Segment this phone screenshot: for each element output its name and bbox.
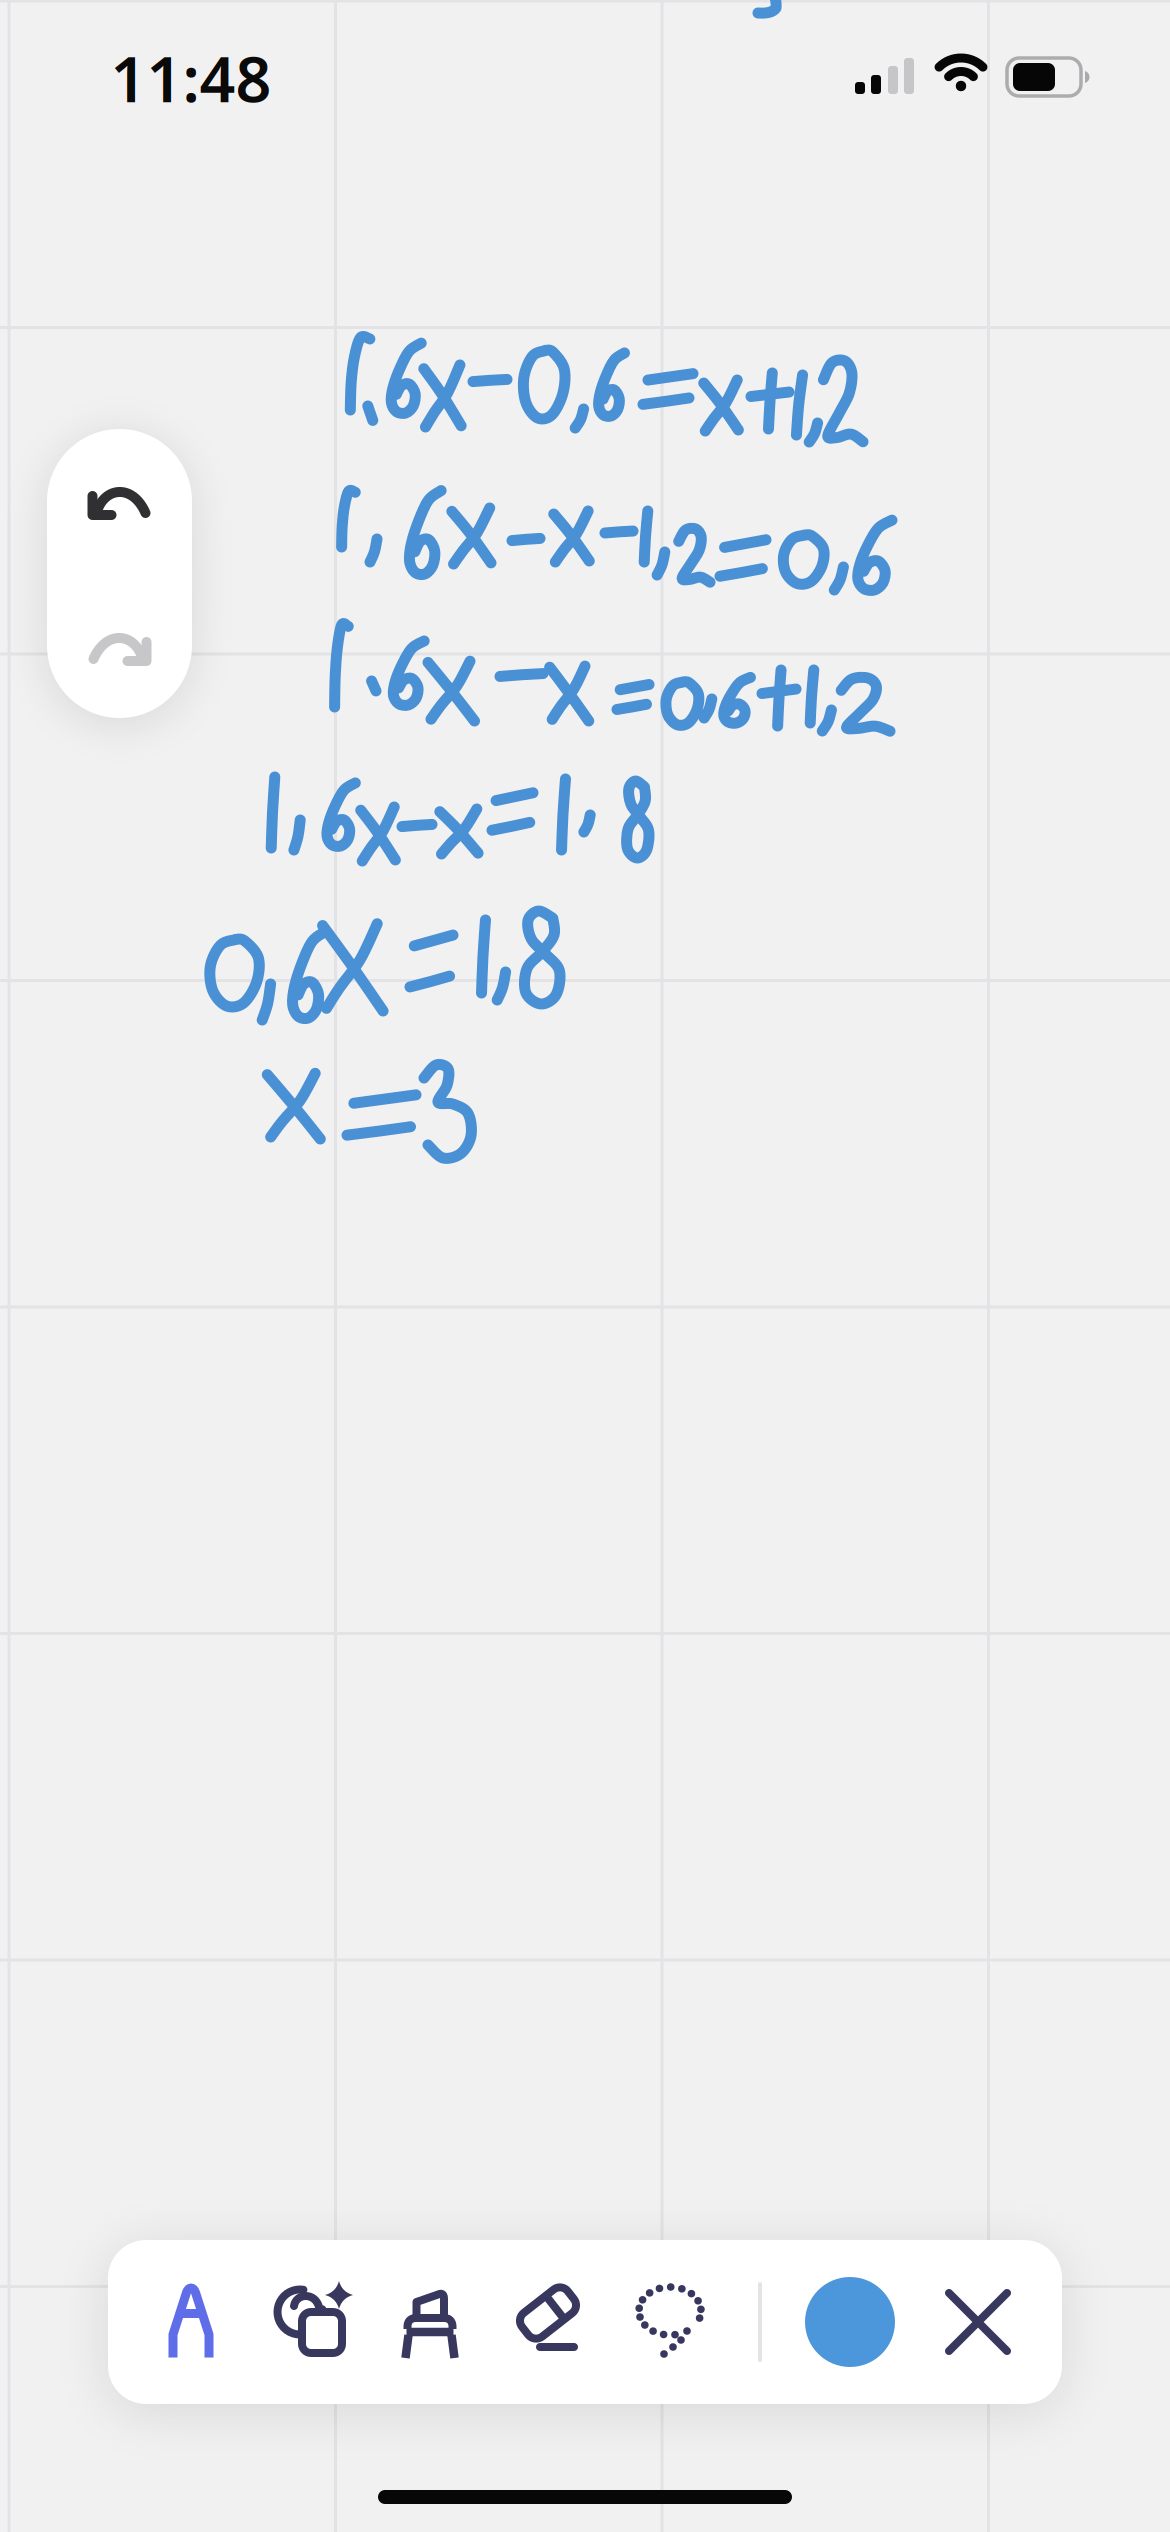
button[interactable]: Color [805, 2277, 895, 2367]
staticText: 11:48 [110, 36, 271, 120]
button[interactable]: Lasso select [620, 2257, 720, 2387]
button[interactable]: Pen [143, 2257, 239, 2387]
button[interactable]: Eraser [498, 2257, 598, 2387]
button[interactable]: Undo [59, 437, 179, 567]
button[interactable]: Highlighter [382, 2257, 478, 2387]
button[interactable]: Shapes [258, 2257, 358, 2387]
button[interactable]: Close [928, 2267, 1028, 2377]
button[interactable]: Redo [59, 583, 179, 713]
